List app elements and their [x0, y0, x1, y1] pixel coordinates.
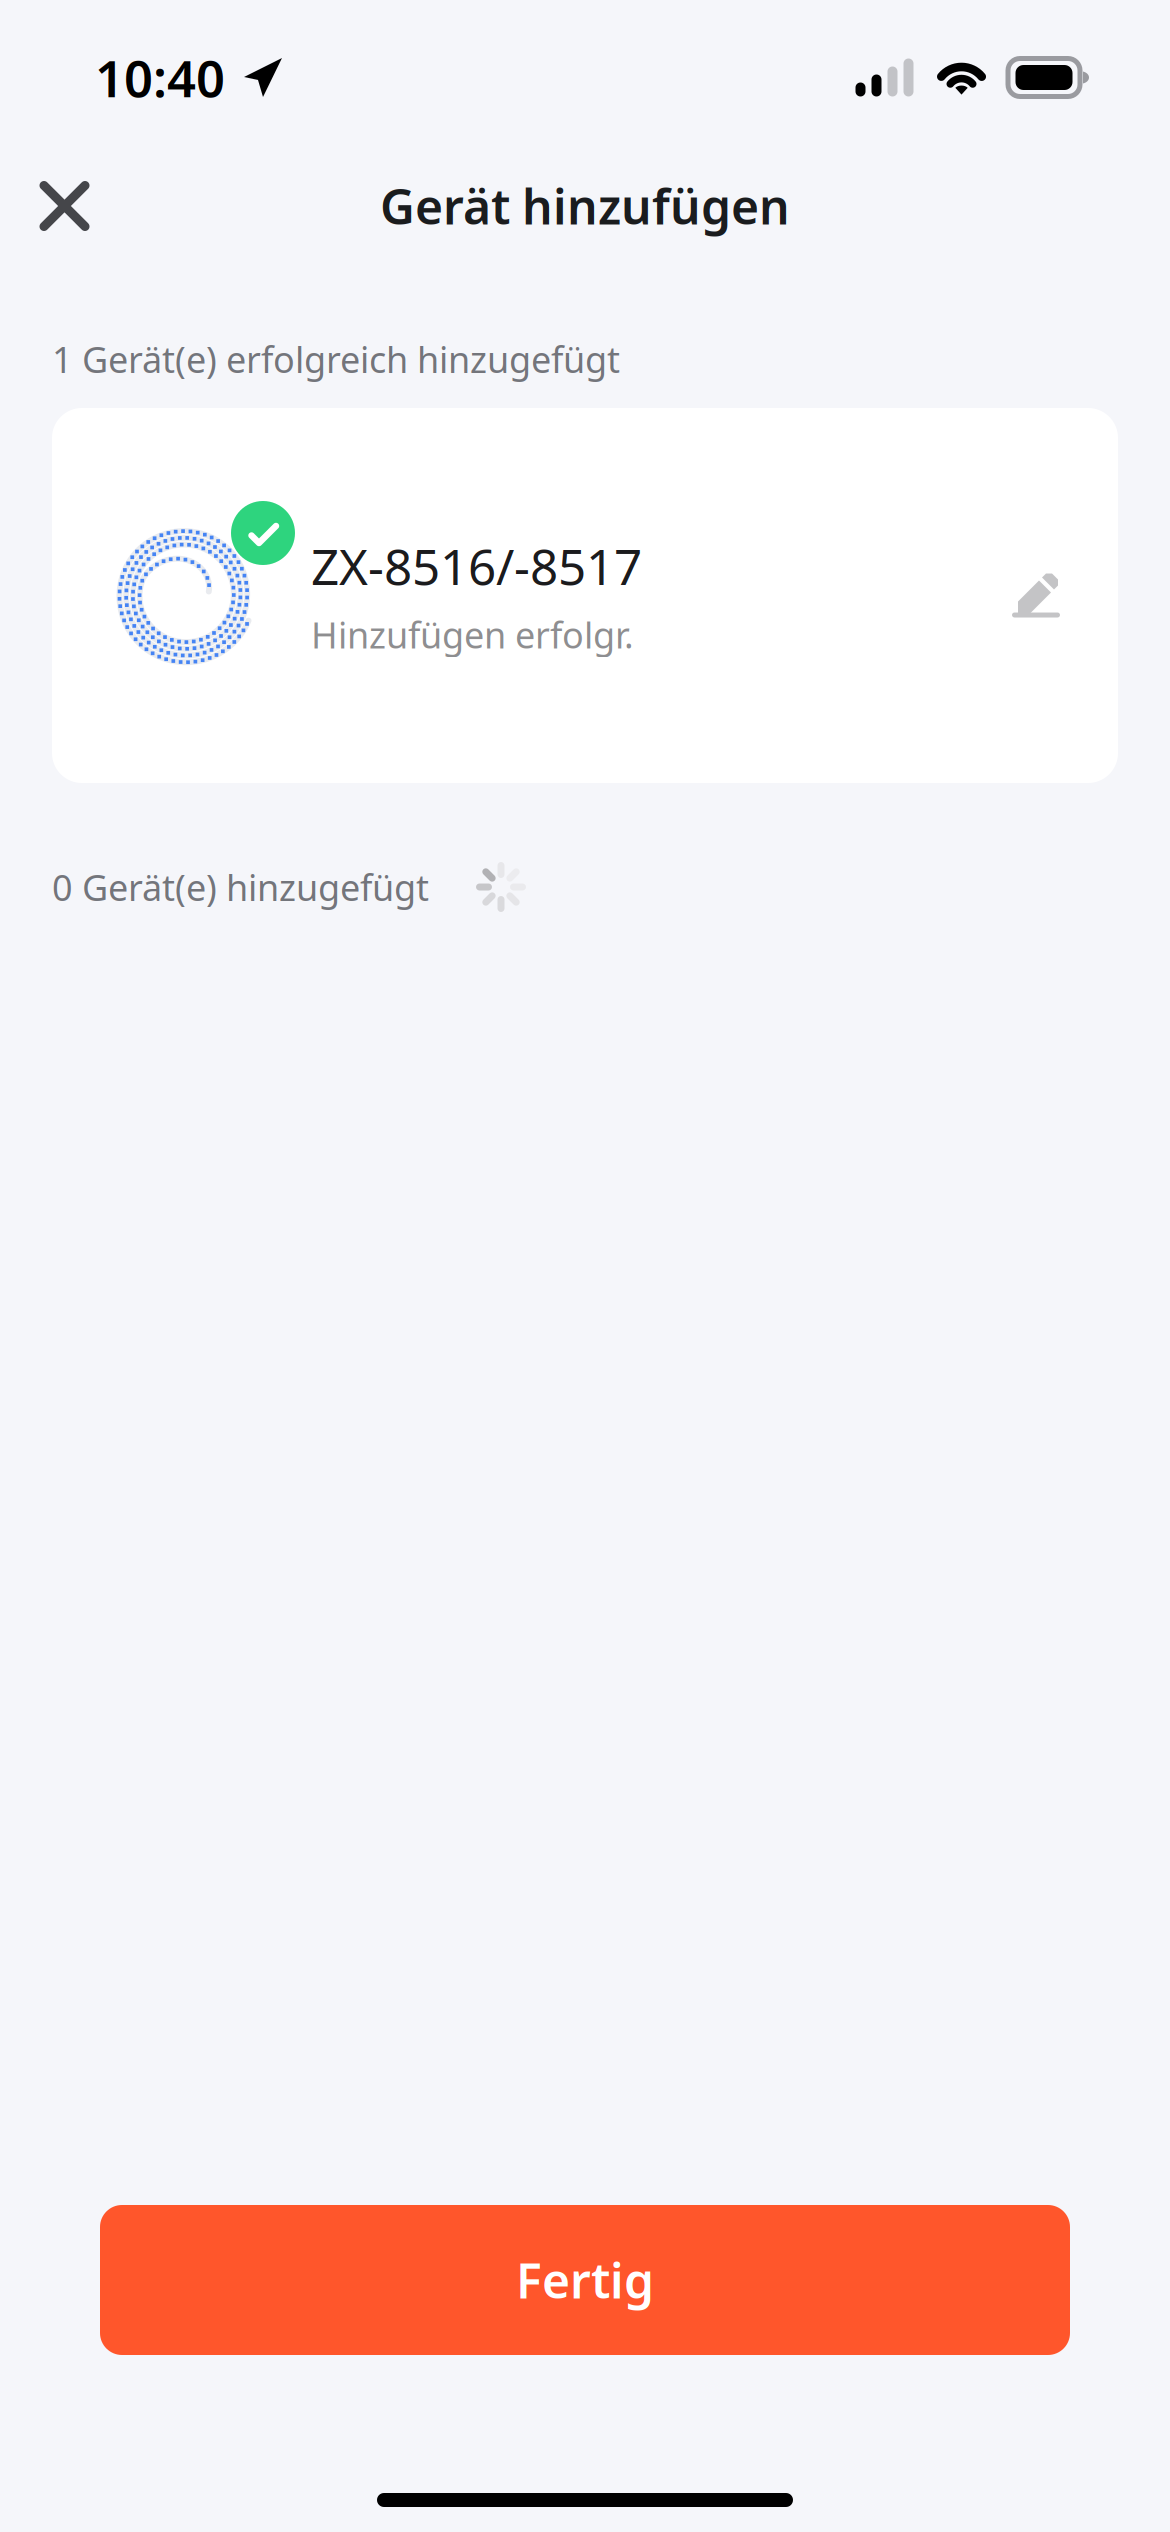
staticText: Fertig [516, 2248, 654, 2312]
staticText: 0 Gerät(e) hinzugefügt [52, 863, 429, 911]
staticText: 10:40 [95, 44, 225, 111]
button[interactable]: Close [0, 147, 129, 264]
button[interactable]: Fertig [100, 2205, 1070, 2355]
button[interactable]: Rename device [980, 539, 1092, 649]
staticText: Gerät hinzufügen [380, 174, 790, 238]
staticText: 1 Gerät(e) erfolgreich hinzugefügt [52, 335, 620, 383]
staticText: ZX-8516/-8517 [311, 533, 642, 598]
staticText: Hinzufügen erfolgr. [311, 610, 634, 658]
